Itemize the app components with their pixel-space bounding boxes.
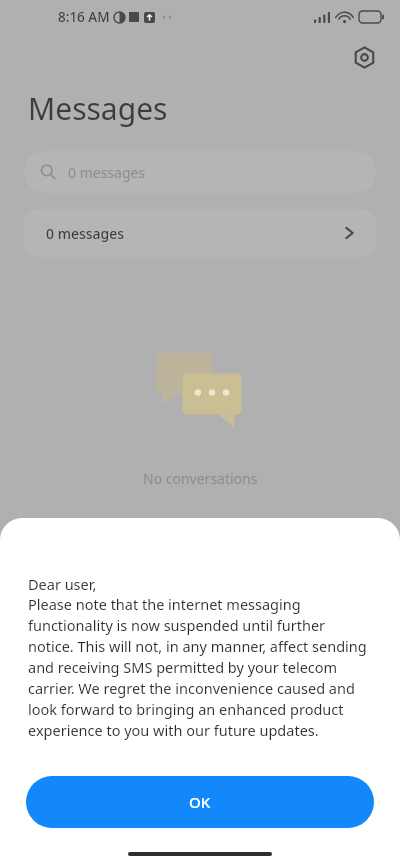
button[interactable]: OK <box>26 776 374 828</box>
button[interactable]: 0 messages <box>24 209 376 257</box>
button[interactable]: Settings <box>346 39 382 75</box>
staticText: 8:16 AM <box>58 8 110 26</box>
staticText: Messages <box>28 88 168 129</box>
staticText: Dear user, Please note that the internet… <box>28 574 372 741</box>
button[interactable]: 0 messages <box>24 151 376 193</box>
staticText: 0 messages <box>46 224 345 243</box>
staticText: 0 messages <box>68 163 146 182</box>
staticText: OK <box>189 792 211 812</box>
staticText: No conversations <box>143 469 258 488</box>
